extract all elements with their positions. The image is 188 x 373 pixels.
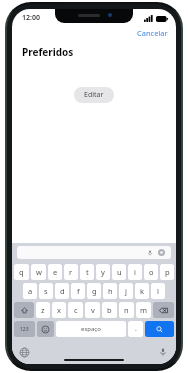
button[interactable]: i [128,264,142,280]
staticText: c [74,305,78,315]
button[interactable]: Emoji [37,321,54,337]
button[interactable]: o [144,264,158,280]
staticText: l [157,286,159,296]
button[interactable]: y [96,264,110,280]
staticText: x [57,305,61,315]
button[interactable]: Cancelar [129,25,176,41]
button[interactable]: Search [145,321,174,337]
staticText: f [77,286,80,296]
button[interactable]: . [128,321,143,337]
staticText: s [44,286,48,296]
staticText: Cancelar [137,28,168,38]
button[interactable]: x [52,302,66,318]
staticText: t [86,267,89,277]
staticText: 12:00 [22,13,40,23]
button[interactable]: k [135,283,149,299]
button[interactable]: r [64,264,78,280]
button[interactable]: q [14,264,29,280]
staticText: z [41,305,45,315]
staticText: d [60,286,65,296]
other: Dictate [147,250,153,256]
staticText: 123 [20,326,29,333]
button[interactable]: v [85,302,100,318]
staticText: espaço [81,325,101,333]
button[interactable]: t [80,264,94,280]
staticText: y [101,267,105,277]
button[interactable]: Dictation [156,345,170,359]
staticText: m [140,305,148,315]
staticText: j [125,286,127,296]
button[interactable]: n [119,302,134,318]
staticText: w [36,267,42,277]
button[interactable]: w [31,264,46,280]
button[interactable]: g [87,283,101,299]
button[interactable]: z [36,302,50,318]
staticText: h [108,286,113,296]
button[interactable]: e [48,264,62,280]
button[interactable]: m [136,302,151,318]
button[interactable]: f [71,283,85,299]
button[interactable]: l [151,283,165,299]
button[interactable]: u [112,264,126,280]
button[interactable]: d [55,283,69,299]
button[interactable]: Editar [74,87,114,103]
staticText: u [117,267,122,277]
staticText: Editar [84,90,104,100]
staticText: a [28,286,33,296]
staticText: k [140,286,145,296]
other: Clear [158,249,165,256]
staticText: Preferidos [22,45,74,59]
staticText: r [69,267,73,277]
button[interactable]: p [160,264,174,280]
button[interactable]: c [68,302,83,318]
staticText: b [107,305,112,315]
button[interactable]: 123 [14,321,35,337]
staticText: p [165,267,170,277]
staticText: . [135,324,137,334]
button[interactable]: b [102,302,117,318]
button[interactable]: h [103,283,117,299]
button[interactable]: j [119,283,133,299]
button[interactable]: espaço [56,321,126,337]
button[interactable]: Shift [14,302,34,318]
staticText: v [91,305,95,315]
button[interactable]: Change keyboard [17,345,32,360]
button[interactable]: Backspace [153,302,174,318]
button[interactable]: s [39,283,53,299]
staticText: n [124,305,129,315]
button[interactable]: Dictate [17,246,171,259]
staticText: q [19,267,24,277]
staticText: e [53,267,58,277]
staticText: g [92,286,97,296]
staticText: i [134,267,136,277]
staticText: o [149,267,154,277]
button[interactable]: a [23,283,37,299]
